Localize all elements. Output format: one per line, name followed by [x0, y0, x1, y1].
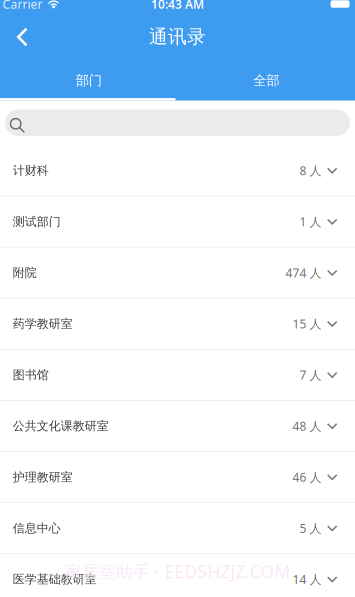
staticText: 5 人 [299, 520, 321, 536]
staticText: 14 人 [292, 571, 321, 587]
button[interactable]: 护理教研室 [0, 452, 355, 503]
button[interactable]: 药学教研室 [0, 299, 355, 350]
staticText: 医学基础教研室 [13, 572, 97, 587]
staticText: 通讯录 [149, 25, 206, 48]
staticText: 公共文化课教研室 [13, 419, 109, 433]
staticText: 474 人 [285, 265, 321, 281]
staticText: Carrier [2, 0, 42, 12]
staticText: 附院 [13, 265, 37, 280]
button[interactable]: 公共文化课教研室 [0, 401, 355, 452]
staticText: 全部 [253, 72, 279, 89]
button[interactable]: Back [0, 19, 48, 56]
staticText: 15 人 [292, 316, 321, 332]
staticText: 药学教研室 [13, 316, 73, 331]
staticText: 信息中心 [13, 521, 61, 536]
button[interactable]: 医学基础教研室 [0, 554, 355, 597]
button[interactable]: 计财科 [0, 145, 355, 197]
staticText: 家居室助手 · EEDSHZJZ.COM [64, 560, 290, 583]
staticText: 计财科 [13, 163, 49, 178]
button[interactable]: 测试部门 [0, 197, 355, 248]
button[interactable]: 附院 [0, 248, 355, 299]
staticText: 48 人 [292, 418, 321, 434]
staticText: 图书馆 [13, 368, 49, 382]
button[interactable]: 全部 [177, 56, 355, 100]
button[interactable]: 部门 [0, 56, 177, 100]
staticText: 护理教研室 [13, 470, 73, 484]
button[interactable]: 图书馆 [0, 350, 355, 401]
staticText: 8 人 [299, 163, 321, 178]
button[interactable]: 信息中心 [0, 503, 355, 554]
staticText: 7 人 [299, 367, 321, 383]
staticText: 10:43 AM [151, 0, 204, 12]
staticText: 1 人 [299, 214, 321, 230]
staticText: 部门 [76, 72, 102, 89]
staticText: 测试部门 [13, 214, 61, 229]
staticText: 46 人 [292, 469, 321, 485]
